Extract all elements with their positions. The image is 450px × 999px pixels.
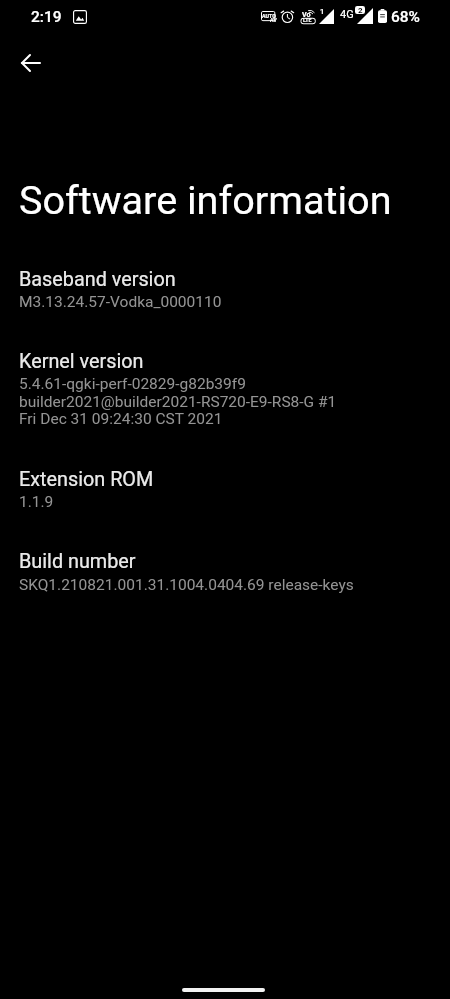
staticText: Kernel version: [19, 350, 144, 373]
button[interactable]: Kernel version: [0, 342, 450, 443]
staticText: SKQ1.210821.001.31.1004.0404.69 release-…: [19, 576, 354, 594]
staticText: Build number: [19, 550, 136, 573]
staticText: Fri Dec 31 09:24:30 CST 2021: [19, 410, 223, 428]
staticText: 1: [320, 7, 325, 16]
staticText: AUTO: [262, 13, 276, 19]
staticText: 2: [358, 6, 363, 14]
staticText: Vo: [302, 10, 311, 18]
button[interactable]: Back: [9, 41, 53, 85]
staticText: M3.13.24.57-Vodka_0000110: [19, 293, 222, 311]
staticText: Software information: [19, 177, 392, 223]
staticText: 68%: [391, 8, 421, 26]
button[interactable]: Build number: [0, 543, 450, 609]
staticText: 5.4.61-qgki-perf-02829-g82b39f9: [19, 375, 246, 393]
staticText: Extension ROM: [19, 468, 154, 491]
button[interactable]: Baseband version: [0, 260, 450, 326]
button[interactable]: Extension ROM: [0, 461, 450, 525]
staticText: AV: [270, 17, 277, 23]
staticText: Baseband version: [19, 268, 176, 291]
staticText: 4G: [340, 8, 354, 21]
staticText: 2:19: [31, 8, 62, 26]
staticText: builder2021@builder2021-RS720-E9-RS8-G #…: [19, 393, 337, 411]
staticText: LTE: [303, 17, 312, 23]
staticText: 1.1.9: [19, 493, 54, 511]
